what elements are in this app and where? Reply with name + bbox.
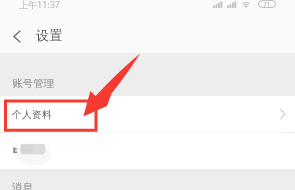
staticText: 个人资料 <box>12 108 52 121</box>
staticText: 消息 <box>12 181 33 190</box>
button[interactable]: 个人资料 <box>0 96 295 132</box>
button[interactable]: 返回 <box>0 20 32 53</box>
staticText: 设置 <box>36 27 63 44</box>
staticText: 71 <box>263 0 271 8</box>
staticText: 账号管理 <box>12 77 54 90</box>
button[interactable] <box>0 133 295 169</box>
staticText: 上午11:37 <box>19 0 61 10</box>
